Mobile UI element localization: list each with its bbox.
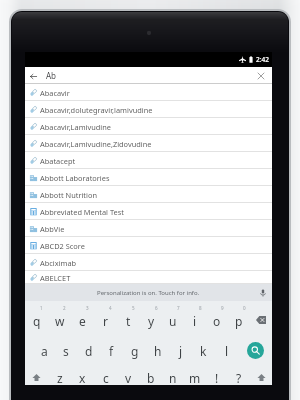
staticText: d xyxy=(85,343,93,359)
staticText: 3 xyxy=(86,305,89,311)
staticText: 7 xyxy=(177,305,180,311)
staticText: Abatacept xyxy=(40,156,76,166)
button[interactable]: c xyxy=(94,361,117,385)
staticText: Abacavir,dolutegravir,lamivudine xyxy=(40,105,153,115)
staticText: ! xyxy=(215,370,219,385)
button[interactable]: d xyxy=(77,331,100,361)
button[interactable]: Voice input xyxy=(257,287,269,299)
button[interactable]: z xyxy=(48,361,71,385)
staticText: b xyxy=(147,370,155,385)
button[interactable]: Search xyxy=(238,331,272,361)
button[interactable]: Backspace xyxy=(250,301,272,331)
button[interactable]: Abacavir,Lamivudine,Zidovudine xyxy=(25,135,272,152)
button[interactable]: a xyxy=(33,331,55,361)
staticText: AbbVie xyxy=(40,224,65,234)
button[interactable]: ABCD2 Score xyxy=(25,237,272,254)
button[interactable]: Abbreviated Mental Test xyxy=(25,203,272,220)
button[interactable]: Abacavir,Lamivudine xyxy=(25,118,272,135)
staticText: x xyxy=(79,370,86,385)
staticText: 2 xyxy=(63,305,66,311)
button[interactable]: Abatacept xyxy=(25,152,272,169)
button[interactable]: 2 xyxy=(48,301,71,331)
button[interactable]: Shift xyxy=(250,361,272,385)
button[interactable]: Shift xyxy=(25,361,48,385)
staticText: l xyxy=(225,343,229,359)
button[interactable]: h xyxy=(146,331,169,361)
staticText: 2:42 xyxy=(256,55,269,64)
staticText: f xyxy=(109,343,114,359)
button[interactable]: ! xyxy=(206,361,228,385)
staticText: g xyxy=(131,343,139,359)
button[interactable]: b xyxy=(140,361,162,385)
button[interactable]: 8 xyxy=(184,301,206,331)
button[interactable]: Abbott Laboratories xyxy=(25,169,272,186)
staticText: 5 xyxy=(132,305,135,311)
button[interactable]: Clear xyxy=(253,68,269,84)
staticText: Abbott Laboratories xyxy=(40,173,110,183)
button[interactable]: 4 xyxy=(94,301,117,331)
staticText: u xyxy=(169,313,177,329)
button[interactable]: Abacavir xyxy=(25,84,272,101)
staticText: n xyxy=(169,370,177,385)
button[interactable]: 5 xyxy=(117,301,140,331)
button[interactable]: 1 xyxy=(25,301,48,331)
staticText: Abacavir xyxy=(40,88,70,98)
staticText: z xyxy=(57,370,63,385)
staticText: k xyxy=(200,343,207,359)
staticText: a xyxy=(41,343,48,359)
staticText: Personalization is on. Touch for info. xyxy=(97,289,200,297)
staticText: p xyxy=(235,313,243,329)
staticText: e xyxy=(79,313,86,329)
staticText: v xyxy=(125,370,132,385)
staticText: ABCD2 Score xyxy=(40,241,85,251)
button[interactable]: l xyxy=(215,331,238,361)
button[interactable]: s xyxy=(55,331,77,361)
button[interactable]: 0 xyxy=(228,301,250,331)
staticText: m xyxy=(189,370,201,385)
button[interactable]: 3 xyxy=(71,301,94,331)
button[interactable]: Abciximab xyxy=(25,254,272,271)
button[interactable]: Back xyxy=(25,68,41,84)
staticText: Abacavir,Lamivudine xyxy=(40,122,111,132)
staticText: j xyxy=(179,343,183,359)
staticText: Abciximab xyxy=(40,258,77,268)
button[interactable]: 7 xyxy=(162,301,184,331)
staticText: 6 xyxy=(155,305,158,311)
staticText: 4 xyxy=(109,305,112,311)
button[interactable]: x xyxy=(71,361,94,385)
staticText: ? xyxy=(236,370,242,385)
staticText: 8 xyxy=(199,305,202,311)
button[interactable]: m xyxy=(184,361,206,385)
button[interactable]: n xyxy=(162,361,184,385)
staticText: h xyxy=(154,343,162,359)
staticText: y xyxy=(148,313,155,329)
button[interactable]: ? xyxy=(228,361,250,385)
staticText: 9 xyxy=(221,305,224,311)
staticText: c xyxy=(103,370,109,385)
button[interactable]: 6 xyxy=(140,301,162,331)
staticText: w xyxy=(55,313,65,329)
staticText: Abbreviated Mental Test xyxy=(40,207,124,217)
staticText: t xyxy=(126,313,131,329)
staticText: i xyxy=(193,313,197,329)
button[interactable]: Abbott Nutrition xyxy=(25,186,272,203)
staticText: Abacavir,Lamivudine,Zidovudine xyxy=(40,139,152,149)
staticText: 1 xyxy=(40,305,43,311)
staticText: o xyxy=(213,313,221,329)
button[interactable]: j xyxy=(169,331,192,361)
button[interactable]: ABELCET xyxy=(25,271,272,284)
staticText: s xyxy=(63,343,69,359)
staticText: r xyxy=(103,313,108,329)
staticText: Abbott Nutrition xyxy=(40,190,97,200)
staticText: ABELCET xyxy=(40,273,71,283)
staticText: Ab xyxy=(46,70,57,81)
staticText: q xyxy=(33,313,41,329)
button[interactable]: 9 xyxy=(206,301,228,331)
button[interactable]: AbbVie xyxy=(25,220,272,237)
button[interactable]: k xyxy=(192,331,215,361)
button[interactable]: v xyxy=(117,361,140,385)
staticText: 0 xyxy=(243,305,246,311)
button[interactable]: Abacavir,dolutegravir,lamivudine xyxy=(25,101,272,118)
button[interactable]: g xyxy=(123,331,146,361)
button[interactable]: f xyxy=(100,331,123,361)
